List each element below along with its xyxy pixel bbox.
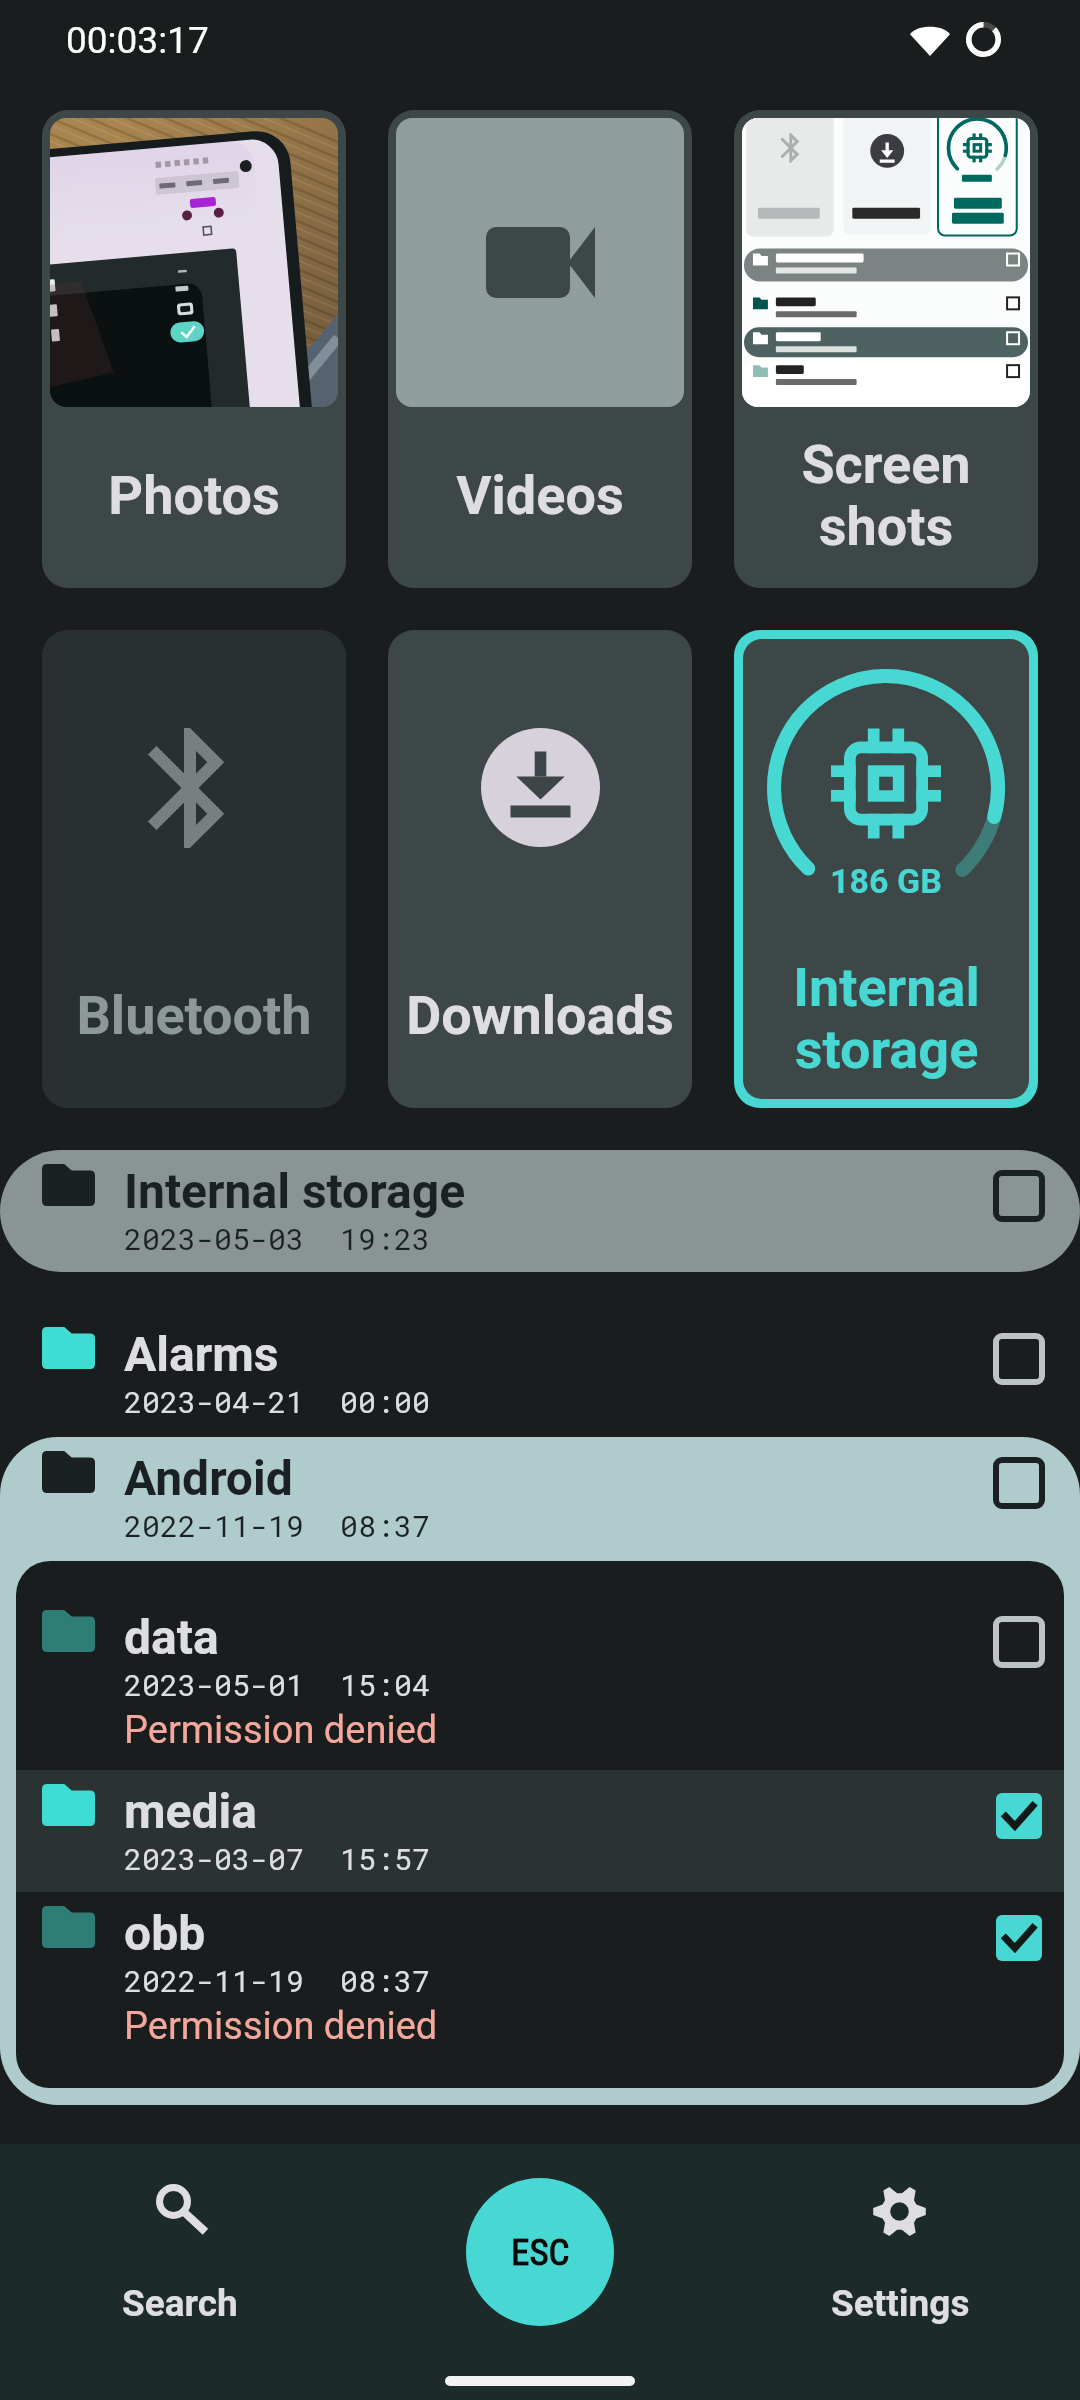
button[interactable]: ESC xyxy=(466,2178,614,2326)
button[interactable]: Bluetooth xyxy=(42,630,346,1108)
staticText: Downloads xyxy=(406,984,674,1047)
button[interactable]: Settings xyxy=(720,2144,1080,2352)
staticText: Search xyxy=(122,2282,238,2325)
staticText: Bluetooth xyxy=(76,984,312,1047)
button[interactable]: Android xyxy=(0,1437,1080,1559)
button[interactable]: Internal storage xyxy=(0,1150,1080,1272)
staticText: Permission denied xyxy=(124,1708,438,1753)
staticText: Settings xyxy=(831,2282,970,2325)
staticText: Photos xyxy=(108,464,280,527)
staticText: Internal storage xyxy=(793,956,980,1081)
staticText: Permission denied xyxy=(124,2004,438,2049)
button[interactable]: 186 GB xyxy=(743,639,1029,1099)
staticText: Screen shots xyxy=(801,433,971,558)
button[interactable]: Screen shots xyxy=(734,110,1038,588)
staticText: 2023-05-03 19:23 xyxy=(124,1219,431,1259)
button[interactable]: Photos xyxy=(42,110,346,588)
staticText: data xyxy=(124,1609,219,1665)
staticText: Videos xyxy=(456,464,624,527)
staticText: 00:03:17 xyxy=(66,19,209,62)
staticText: 2022-11-19 08:37 xyxy=(124,1506,431,1546)
button[interactable]: Downloads xyxy=(388,630,692,1108)
button[interactable]: data xyxy=(16,1596,1064,1770)
button[interactable]: Alarms xyxy=(0,1313,1080,1435)
staticText: Android xyxy=(124,1450,293,1506)
staticText: 186 GB xyxy=(830,861,942,901)
button[interactable]: media xyxy=(16,1770,1064,1892)
staticText: 2023-05-01 15:04 xyxy=(124,1665,431,1705)
staticText: 2023-04-21 00:00 xyxy=(124,1382,431,1422)
staticText: 2022-11-19 08:37 xyxy=(124,1961,431,2001)
staticText: Alarms xyxy=(124,1326,279,1382)
button[interactable]: Videos xyxy=(388,110,692,588)
button[interactable]: obb xyxy=(16,1892,1064,2066)
staticText: Internal storage xyxy=(124,1163,466,1219)
staticText: media xyxy=(124,1783,258,1839)
button[interactable]: Search xyxy=(0,2144,360,2352)
staticText: ESC xyxy=(511,2231,570,2274)
staticText: obb xyxy=(124,1905,206,1961)
staticText: 2023-03-07 15:57 xyxy=(124,1839,431,1879)
